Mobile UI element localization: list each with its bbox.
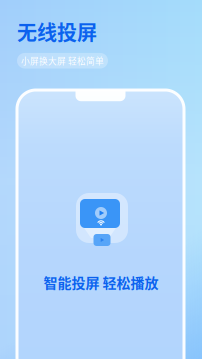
staticText: 小屏换大屏 轻松简单 <box>21 54 104 67</box>
staticText: 无线投屏 <box>17 17 97 46</box>
staticText: 智能投屏 轻松播放 <box>43 272 158 292</box>
